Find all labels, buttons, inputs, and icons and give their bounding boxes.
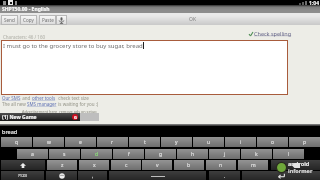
button[interactable]: c (111, 160, 141, 170)
staticText: q (15, 139, 19, 146)
staticText: z (61, 162, 64, 169)
staticText: I must go to the grocery store to buy su… (3, 42, 143, 50)
staticText: d (95, 151, 99, 158)
staticText: G (74, 115, 77, 120)
button[interactable]: Copy (20, 15, 37, 25)
button[interactable]: . (209, 171, 240, 180)
staticText: informer (288, 167, 313, 174)
staticText: l (288, 151, 290, 158)
staticText: i (240, 139, 242, 146)
staticText: p (303, 139, 307, 146)
staticText: u (207, 139, 211, 146)
staticText: f (128, 151, 130, 158)
staticText: Check spelling (254, 30, 292, 37)
staticText: check text size (56, 95, 89, 101)
button[interactable]: h (177, 149, 208, 159)
button[interactable]: q (1, 137, 32, 147)
button[interactable]: y (161, 137, 192, 147)
button[interactable]: Our SMS (2, 95, 21, 101)
button[interactable]: l (273, 149, 304, 159)
staticText: b (187, 162, 191, 169)
button[interactable]: g (145, 149, 176, 159)
staticText: x (93, 162, 96, 169)
button[interactable]: Enter (242, 171, 320, 180)
staticText: h (191, 151, 195, 158)
staticText: t (144, 139, 146, 146)
staticText: k (255, 151, 258, 158)
button[interactable]: v (142, 160, 172, 170)
button[interactable]: u (193, 137, 224, 147)
button[interactable]: k (241, 149, 272, 159)
button[interactable]: o (257, 137, 288, 147)
button[interactable]: t (129, 137, 160, 147)
button[interactable]: r (97, 137, 128, 147)
button[interactable]: bread (2, 128, 18, 135)
staticText: Copy (23, 17, 34, 23)
button[interactable]: Emoji (46, 171, 77, 180)
staticText: Paste (42, 17, 54, 23)
button[interactable]: (1) New Game (0, 113, 80, 121)
staticText: and (21, 95, 32, 101)
button[interactable]: b (174, 160, 204, 170)
button[interactable]: Shift (1, 160, 45, 170)
button[interactable]: n (206, 160, 236, 170)
button[interactable]: Send (1, 15, 18, 25)
staticText: v (156, 162, 159, 169)
button[interactable]: p (289, 137, 320, 147)
button[interactable]: i (225, 137, 256, 147)
staticText: m (251, 162, 256, 169)
staticText: OK (189, 16, 197, 23)
staticText: is waiting for you :) (57, 101, 99, 107)
staticText: e (79, 139, 82, 146)
button[interactable]: ?123 (1, 171, 44, 180)
button[interactable]: j (209, 149, 240, 159)
staticText: a (31, 151, 34, 158)
staticText: j (224, 151, 226, 158)
staticText: w (47, 139, 51, 146)
button[interactable]: other tools (32, 95, 56, 101)
button[interactable]: m (238, 160, 268, 170)
button[interactable]: x (79, 160, 109, 170)
staticText: n (219, 162, 223, 169)
button[interactable]: d (81, 149, 112, 159)
button[interactable]: f (113, 149, 144, 159)
staticText: . (224, 173, 226, 180)
staticText: r (111, 139, 114, 146)
staticText: The all new (2, 101, 27, 107)
staticText: ?123 (18, 173, 28, 179)
button[interactable]: Voice input (56, 15, 67, 25)
staticText: o (271, 139, 275, 146)
button[interactable]: s (49, 149, 80, 159)
staticText: y (175, 139, 178, 146)
staticText: 1:04 (309, 0, 319, 5)
staticText: g (159, 151, 163, 158)
staticText: SHPT50.00 - English (2, 6, 50, 13)
button[interactable]: Check spelling (249, 30, 292, 37)
button[interactable]: Paste (39, 15, 56, 25)
staticText: android (288, 160, 310, 167)
button[interactable]: Space (109, 171, 206, 180)
button[interactable]: w (33, 137, 64, 147)
staticText: , (92, 173, 94, 180)
staticText: Characters: 46 / 160 (3, 34, 46, 40)
staticText: Send (4, 17, 15, 23)
staticText: (1) New Game (2, 114, 37, 121)
button[interactable]: , (78, 171, 107, 180)
staticText: s (63, 151, 66, 158)
button[interactable]: SMS manager (27, 101, 57, 107)
button[interactable]: Backspace (271, 160, 320, 170)
staticText: c (125, 162, 128, 169)
button[interactable]: a (17, 149, 48, 159)
button[interactable]: I must go to the grocery store to buy su… (1, 40, 288, 95)
staticText: Advertisement here, remove ads on setup (22, 109, 97, 114)
button[interactable]: e (65, 137, 96, 147)
button[interactable]: z (47, 160, 77, 170)
